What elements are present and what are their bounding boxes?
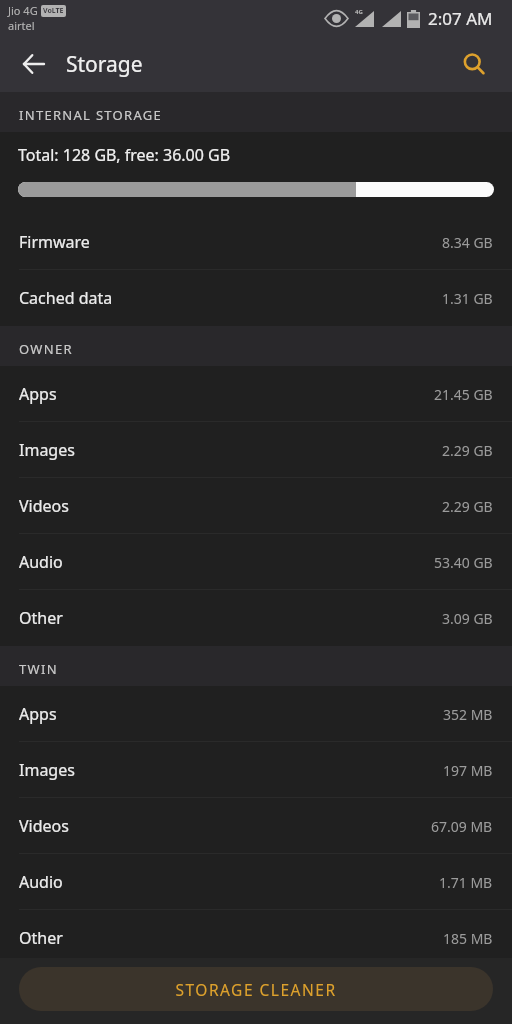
staticText: Apps <box>19 383 57 405</box>
staticText: 21.45 GB <box>434 385 493 404</box>
staticText: Images <box>19 759 75 781</box>
staticText: STORAGE CLEANER <box>175 979 337 1000</box>
staticText: Firmware <box>19 231 90 253</box>
staticText: 197 MB <box>443 761 493 780</box>
staticText: 8.34 GB <box>442 233 493 252</box>
button[interactable]: STORAGE CLEANER <box>19 967 493 1011</box>
staticText: 1.71 MB <box>439 873 493 892</box>
button[interactable]: Images <box>0 742 512 798</box>
staticText: 2.29 GB <box>442 497 493 516</box>
staticText: 2:07 AM <box>428 7 493 30</box>
staticText: INTERNAL STORAGE <box>19 106 163 124</box>
button[interactable]: Other <box>0 910 512 958</box>
button[interactable]: Cached data <box>0 270 512 326</box>
staticText: Apps <box>19 703 57 725</box>
staticText: 1.31 GB <box>442 289 493 308</box>
staticText: 53.40 GB <box>434 553 493 572</box>
staticText: Audio <box>19 551 63 573</box>
staticText: Images <box>19 439 75 461</box>
button[interactable]: Audio <box>0 854 512 910</box>
button[interactable] <box>454 44 494 84</box>
button[interactable]: Videos <box>0 478 512 534</box>
staticText: 67.09 MB <box>431 817 493 836</box>
staticText: Storage <box>66 50 143 79</box>
staticText: 2.29 GB <box>442 441 493 460</box>
staticText: airtel <box>8 18 35 33</box>
button[interactable]: Apps <box>0 686 512 742</box>
staticText: Other <box>19 607 63 629</box>
button[interactable] <box>14 44 54 84</box>
staticText: Jio 4G <box>8 3 38 18</box>
staticText: Cached data <box>19 287 113 309</box>
staticText: 4G <box>355 8 363 16</box>
staticText: OWNER <box>19 340 73 358</box>
staticText: 185 MB <box>443 929 493 948</box>
button[interactable]: Apps <box>0 366 512 422</box>
staticText: Audio <box>19 871 63 893</box>
staticText: Total: 128 GB, free: 36.00 GB <box>18 144 231 166</box>
staticText: TWIN <box>19 660 58 678</box>
staticText: VoLTE <box>43 6 64 16</box>
button[interactable]: Videos <box>0 798 512 854</box>
staticText: 352 MB <box>443 705 493 724</box>
button[interactable]: Other <box>0 590 512 646</box>
button[interactable]: Audio <box>0 534 512 590</box>
button[interactable]: Images <box>0 422 512 478</box>
staticText: Videos <box>19 495 69 517</box>
staticText: Other <box>19 927 63 949</box>
button[interactable]: Firmware <box>0 214 512 270</box>
staticText: 3.09 GB <box>442 609 493 628</box>
staticText: Videos <box>19 815 69 837</box>
